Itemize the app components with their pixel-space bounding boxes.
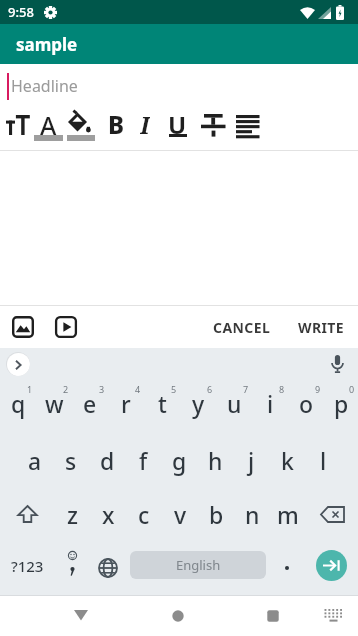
staticText: s	[65, 445, 77, 476]
staticText: a	[28, 445, 42, 476]
button[interactable]	[164, 595, 192, 636]
staticText: 8	[279, 383, 285, 395]
staticText: 0	[349, 383, 355, 395]
button[interactable]: English	[126, 541, 269, 595]
button[interactable]	[198, 108, 229, 142]
button[interactable]: I	[130, 108, 159, 135]
staticText: n	[245, 499, 260, 530]
button[interactable]: y	[180, 380, 216, 433]
button[interactable]	[90, 541, 126, 595]
button[interactable]	[232, 108, 263, 142]
staticText: m	[277, 499, 299, 530]
button[interactable]: U	[163, 108, 192, 135]
staticText: Headline	[11, 75, 78, 97]
button[interactable]: t	[144, 380, 180, 433]
staticText: k	[281, 445, 294, 476]
button[interactable]: A	[33, 108, 63, 135]
button[interactable]: c	[126, 487, 162, 541]
staticText: 7	[243, 383, 249, 395]
button[interactable]: j	[233, 433, 269, 487]
staticText: h	[208, 445, 223, 476]
button[interactable]	[12, 306, 46, 348]
staticText: 3	[99, 383, 105, 395]
button[interactable]: x	[90, 487, 126, 541]
button[interactable]: s	[53, 433, 89, 487]
button[interactable]: u	[216, 380, 252, 433]
button[interactable]	[55, 306, 89, 348]
button[interactable]: n	[234, 487, 270, 541]
staticText: c	[138, 499, 150, 530]
staticText: l	[320, 445, 327, 476]
staticText: U	[168, 108, 187, 135]
button[interactable]: f	[125, 433, 161, 487]
button[interactable]: e	[72, 380, 108, 433]
button[interactable]: k	[269, 433, 305, 487]
button[interactable]	[54, 541, 90, 595]
button[interactable]	[305, 541, 358, 595]
button[interactable]: m	[270, 487, 306, 541]
staticText: ?123	[11, 556, 44, 576]
button[interactable]	[306, 487, 358, 541]
staticText: p	[334, 388, 349, 419]
staticText: o	[299, 388, 314, 419]
button[interactable]: w	[36, 380, 72, 433]
button[interactable]: d	[89, 433, 125, 487]
staticText: 6	[207, 383, 213, 395]
staticText: WRITE	[298, 318, 345, 337]
button[interactable]: B	[101, 108, 131, 135]
button[interactable]: b	[198, 487, 234, 541]
staticText: r	[121, 388, 131, 419]
staticText: z	[67, 499, 78, 530]
staticText: e	[83, 388, 97, 419]
staticText: j	[248, 445, 255, 476]
button[interactable]	[269, 541, 305, 595]
button[interactable]: i	[252, 380, 288, 433]
button[interactable]: CANCEL	[213, 306, 271, 348]
staticText: x	[102, 499, 115, 530]
button[interactable]	[2, 108, 33, 142]
button[interactable]	[67, 595, 95, 636]
button[interactable]: q	[0, 380, 36, 433]
button[interactable]: p	[324, 380, 358, 433]
button[interactable]: r	[108, 380, 144, 433]
button[interactable]: ?123	[0, 541, 54, 595]
button[interactable]	[6, 352, 30, 376]
button[interactable]	[320, 595, 346, 636]
staticText: f	[139, 445, 148, 476]
button[interactable]: z	[54, 487, 90, 541]
staticText: d	[100, 445, 115, 476]
button[interactable]: h	[197, 433, 233, 487]
button[interactable]	[259, 595, 287, 636]
button[interactable]: Headline	[0, 64, 358, 108]
staticText: B	[108, 108, 125, 135]
staticText: u	[227, 388, 242, 419]
staticText: English	[176, 556, 221, 574]
button[interactable]	[64, 108, 96, 142]
button[interactable]: WRITE	[298, 306, 345, 348]
staticText: i	[267, 388, 274, 419]
staticText: I	[140, 108, 150, 135]
staticText: v	[174, 499, 187, 530]
staticText: y	[192, 388, 205, 419]
staticText: b	[209, 499, 224, 530]
staticText: 1	[27, 383, 33, 395]
button[interactable]: a	[17, 433, 53, 487]
staticText: g	[172, 445, 187, 476]
staticText: 5	[171, 383, 177, 395]
button[interactable]	[327, 354, 347, 374]
button[interactable]: l	[305, 433, 341, 487]
staticText: 9:58	[8, 3, 34, 21]
staticText: 2	[63, 383, 69, 395]
staticText: w	[45, 388, 64, 419]
staticText: q	[11, 388, 26, 419]
staticText: t	[158, 388, 167, 419]
button[interactable]	[0, 487, 54, 541]
staticText: CANCEL	[213, 318, 271, 337]
staticText: sample	[16, 33, 78, 56]
staticText: 9	[315, 383, 321, 395]
staticText: 4	[135, 383, 141, 395]
button[interactable]: v	[162, 487, 198, 541]
button[interactable]: g	[161, 433, 197, 487]
button[interactable]: o	[288, 380, 324, 433]
staticText: A	[40, 108, 57, 135]
